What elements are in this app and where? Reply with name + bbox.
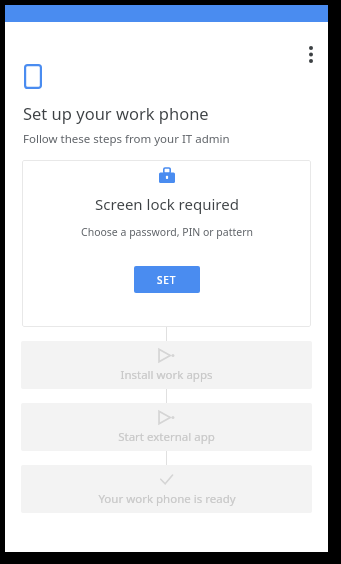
- staticText: Choose a password, PIN or pattern: [81, 225, 253, 239]
- button[interactable]: More options: [297, 40, 325, 68]
- button[interactable]: Screen lock required: [22, 160, 311, 327]
- staticText: Set up your work phone: [23, 102, 209, 124]
- staticText: Start external app: [118, 429, 215, 445]
- staticText: Follow these steps from your IT admin: [23, 131, 230, 147]
- staticText: Install work apps: [120, 367, 213, 383]
- button[interactable]: SET: [134, 266, 200, 293]
- staticText: Your work phone is ready: [98, 491, 236, 507]
- staticText: SET: [157, 273, 177, 287]
- button[interactable]: Start external app: [21, 403, 312, 451]
- button[interactable]: Your work phone is ready: [21, 465, 312, 513]
- button[interactable]: Install work apps: [21, 341, 312, 389]
- staticText: Screen lock required: [95, 194, 239, 214]
